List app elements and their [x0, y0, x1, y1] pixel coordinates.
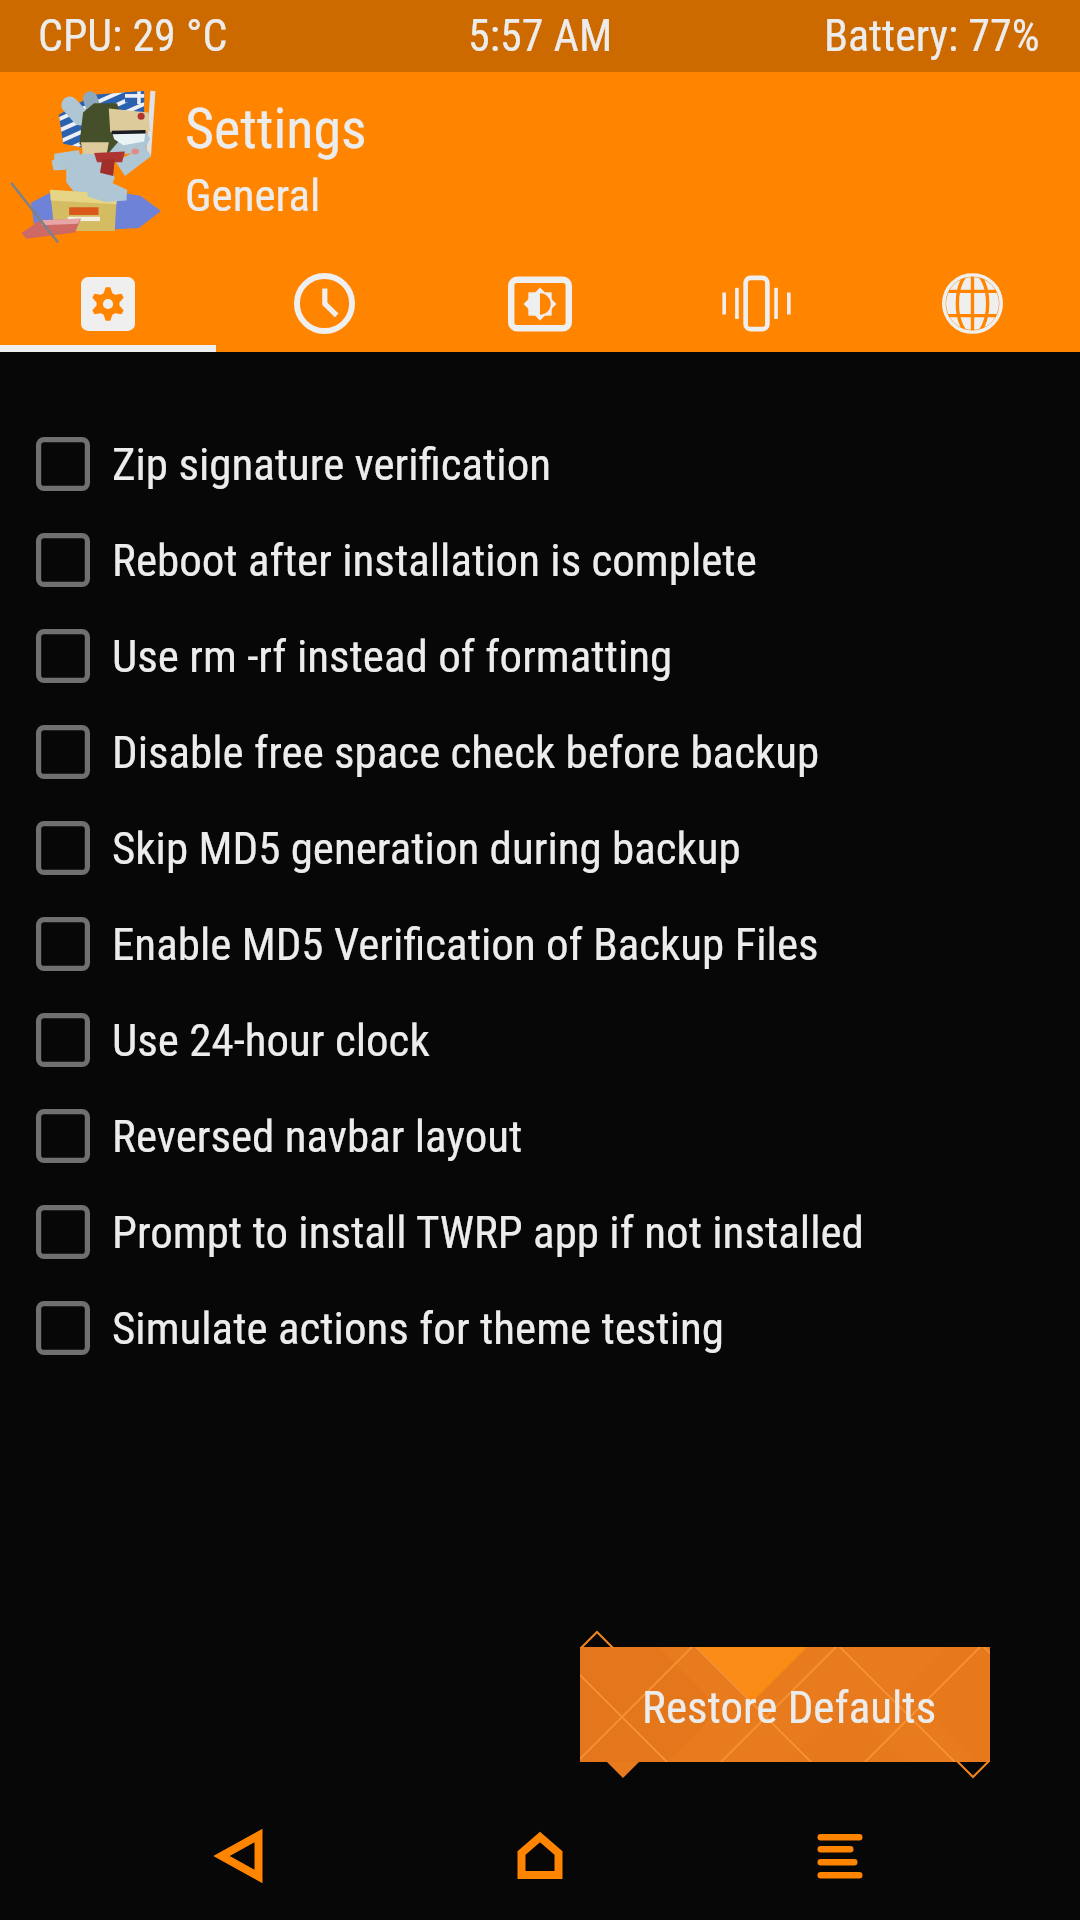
button[interactable]: Enable MD5 Verification of Backup Files [0, 896, 1080, 992]
button[interactable]: Vibration settings [648, 251, 864, 352]
button[interactable]: Prompt to install TWRP app if not instal… [0, 1184, 1080, 1280]
staticText: Disable free space check before backup [112, 726, 820, 779]
staticText: Enable MD5 Verification of Backup Files [112, 918, 819, 971]
staticText: CPU: 29 °C [38, 10, 228, 62]
staticText: Skip MD5 generation during backup [112, 822, 741, 875]
button[interactable]: Zip signature verification [0, 416, 1080, 512]
staticText: 5:57 AM [468, 10, 613, 62]
button[interactable]: Language settings [864, 251, 1080, 352]
staticText: Zip signature verification [112, 438, 552, 491]
button[interactable]: General settings [0, 251, 216, 352]
button[interactable]: Restore Defaults [582, 1652, 996, 1762]
staticText: Battery: 77% [824, 10, 1040, 62]
staticText: Reboot after installation is complete [112, 534, 757, 587]
staticText: Restore Defaults [642, 1681, 937, 1734]
staticText: Simulate actions for theme testing [112, 1302, 725, 1355]
staticText: Use 24-hour clock [112, 1014, 430, 1067]
staticText: General [185, 169, 321, 222]
button[interactable]: Disable free space check before backup [0, 704, 1080, 800]
button[interactable]: Reversed navbar layout [0, 1088, 1080, 1184]
button[interactable]: Use rm -rf instead of formatting [0, 608, 1080, 704]
button[interactable]: Time zone settings [216, 251, 432, 352]
button[interactable]: Reboot after installation is complete [0, 512, 1080, 608]
button[interactable]: Menu [765, 1800, 915, 1912]
button[interactable]: Simulate actions for theme testing [0, 1280, 1080, 1376]
staticText: Settings [185, 96, 367, 162]
staticText: Reversed navbar layout [112, 1110, 523, 1163]
button[interactable]: Home [465, 1800, 615, 1912]
staticText: Prompt to install TWRP app if not instal… [112, 1206, 864, 1259]
button[interactable]: Back [165, 1800, 315, 1912]
button[interactable]: Use 24-hour clock [0, 992, 1080, 1088]
button[interactable]: Skip MD5 generation during backup [0, 800, 1080, 896]
button[interactable]: Screen settings [432, 251, 648, 352]
staticText: Use rm -rf instead of formatting [112, 630, 673, 683]
